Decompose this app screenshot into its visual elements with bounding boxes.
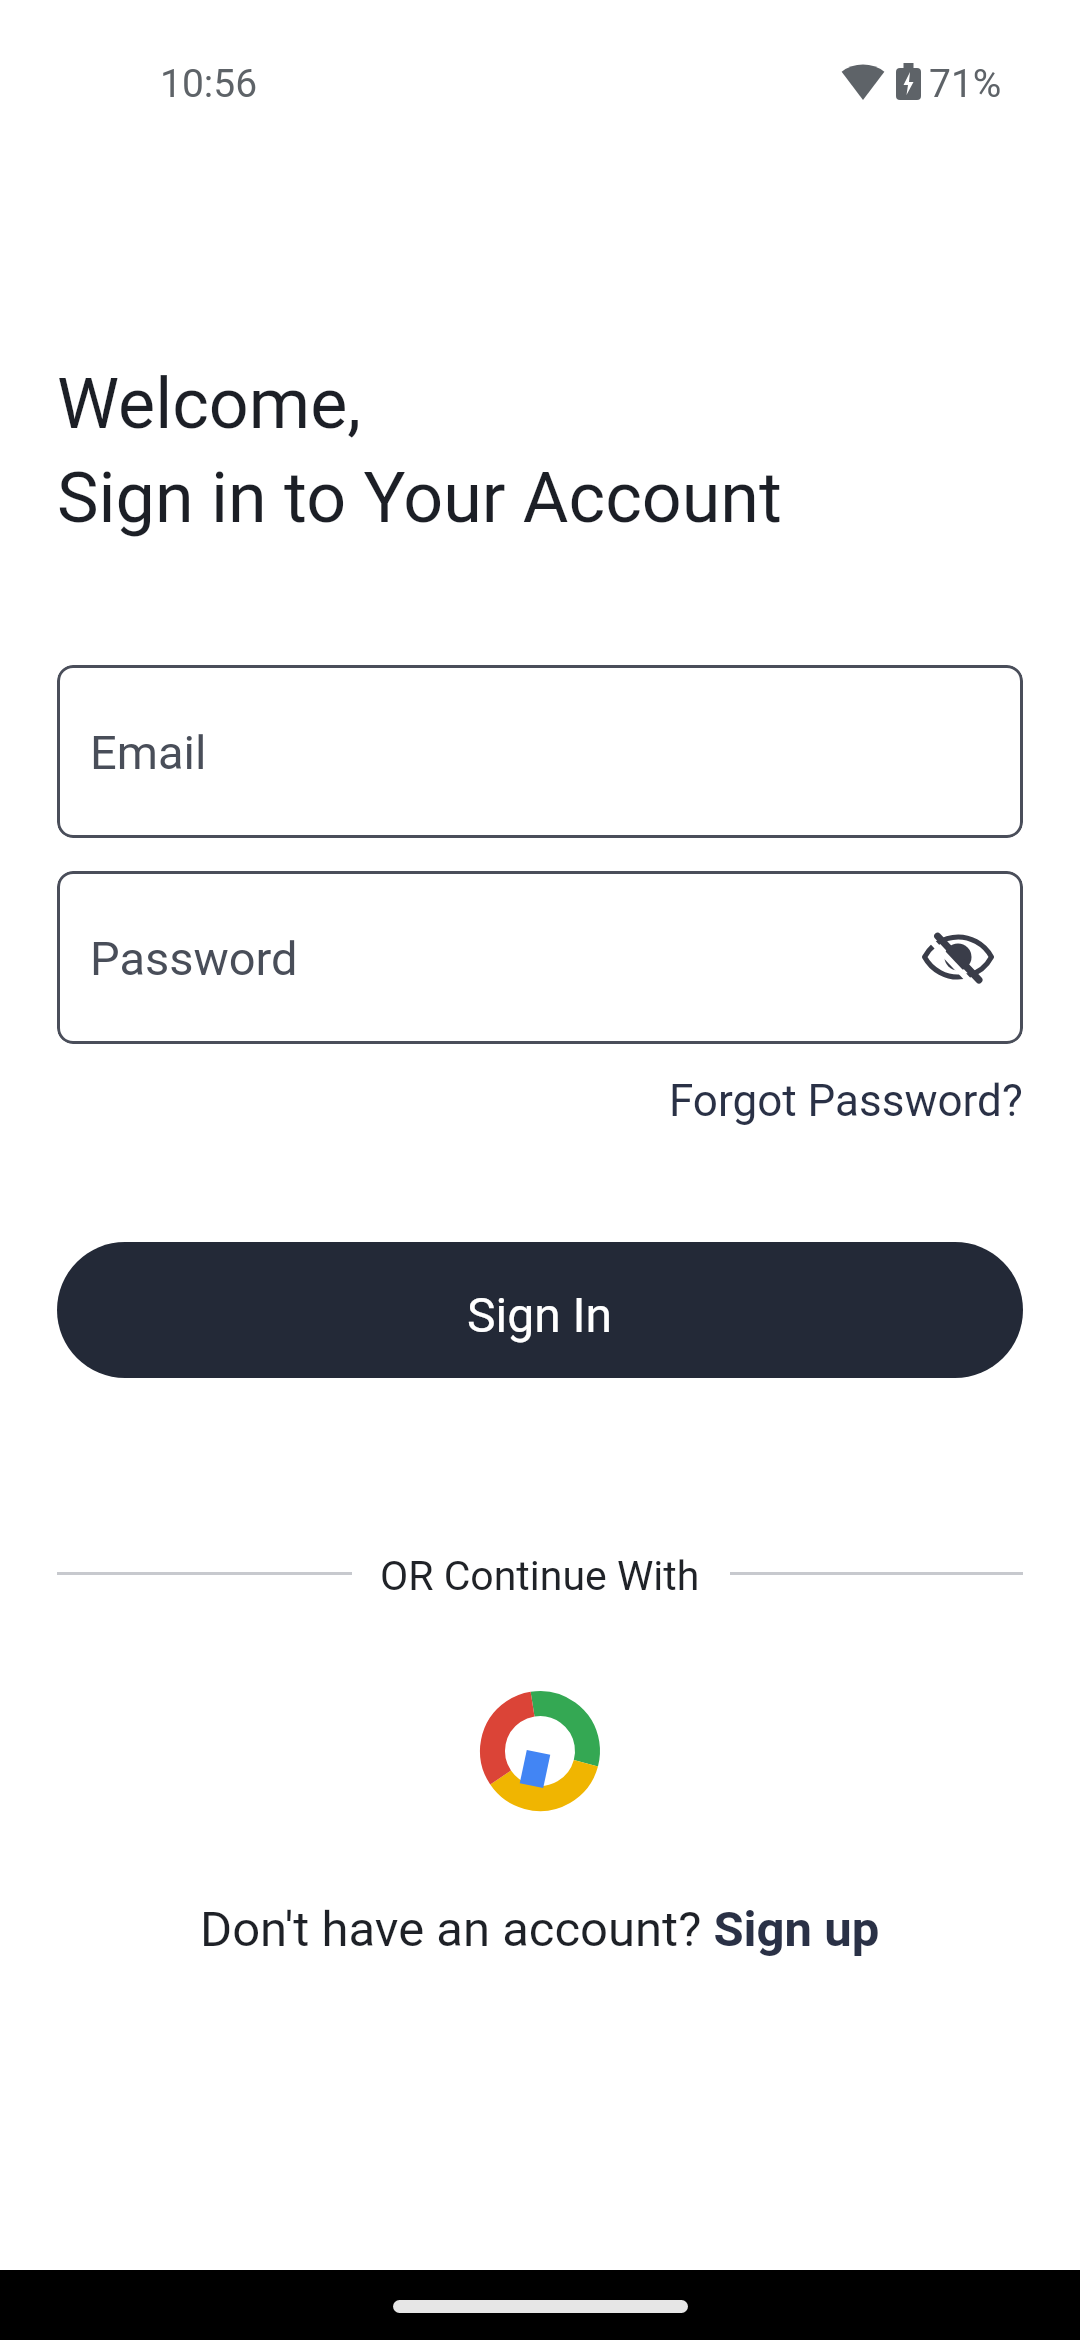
staticText: Email bbox=[90, 725, 207, 780]
staticText: Sign In bbox=[467, 1287, 613, 1343]
staticText: Welcome, bbox=[57, 363, 362, 445]
button[interactable] bbox=[918, 917, 998, 997]
button[interactable]: Don't have an account? Sign up bbox=[200, 1901, 880, 1958]
staticText: OR Continue With bbox=[380, 1552, 700, 1600]
staticText: Don't have an account? Sign up bbox=[200, 1901, 880, 1958]
button[interactable] bbox=[57, 1242, 1023, 1378]
staticText: 71% bbox=[929, 61, 1002, 107]
staticText: Password bbox=[90, 931, 298, 986]
staticText: Forgot Password? bbox=[669, 1075, 1023, 1127]
staticText: Sign in to Your Account bbox=[57, 457, 782, 539]
button[interactable]: Forgot Password? bbox=[669, 1075, 1023, 1127]
button[interactable]: Password bbox=[57, 871, 1023, 1044]
button[interactable] bbox=[480, 1691, 600, 1811]
button[interactable]: Email bbox=[57, 665, 1023, 838]
staticText: 10:56 bbox=[160, 61, 258, 107]
